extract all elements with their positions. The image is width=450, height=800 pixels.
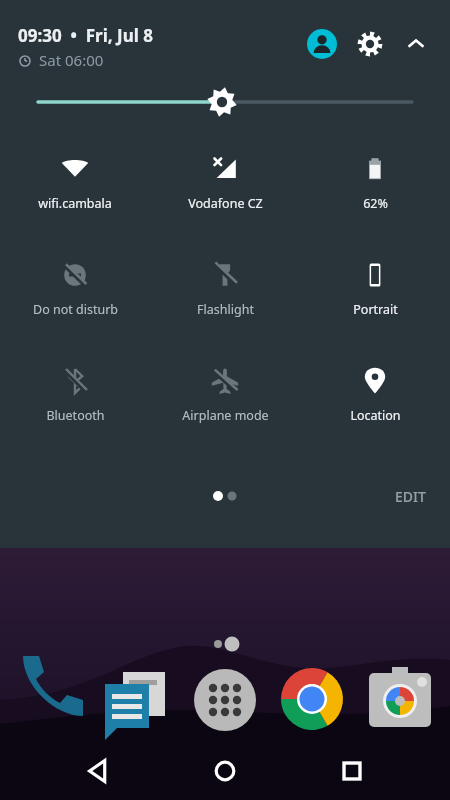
staticText: Portrait <box>353 301 398 318</box>
staticText: 62% <box>363 195 388 212</box>
button[interactable]: Vodafone CZ <box>150 150 300 216</box>
button[interactable]: EDIT <box>389 481 432 512</box>
staticText: EDIT <box>395 487 426 506</box>
staticText: Airplane mode <box>182 407 269 424</box>
button[interactable]: Phone <box>22 668 86 732</box>
staticText: Location <box>350 407 401 424</box>
button[interactable]: Brightness <box>0 82 450 122</box>
button[interactable]: 62% <box>300 150 450 216</box>
button[interactable]: Airplane mode <box>150 362 300 428</box>
staticText: Bluetooth <box>46 407 105 424</box>
button[interactable]: Location <box>300 362 450 428</box>
button[interactable]: Portrait <box>300 256 450 322</box>
button[interactable]: Messages <box>107 668 171 732</box>
button[interactable]: Collapse <box>396 24 436 64</box>
button[interactable]: Home <box>196 742 254 800</box>
button[interactable]: Camera <box>364 668 428 732</box>
staticText: 09:30 • Fri, Jul 8 <box>18 24 153 47</box>
button[interactable]: Do not disturb <box>0 256 150 322</box>
button[interactable]: wifi.cambala <box>0 150 150 216</box>
staticText: Do not disturb <box>33 301 118 318</box>
staticText: wifi.cambala <box>38 195 112 212</box>
button[interactable]: Settings <box>350 24 390 64</box>
button[interactable]: Flashlight <box>150 256 300 322</box>
button[interactable]: Recents <box>323 742 381 800</box>
button[interactable]: Bluetooth <box>0 362 150 428</box>
staticText: Sat 06:00 <box>39 50 104 70</box>
button[interactable]: Back <box>69 742 127 800</box>
staticText: Flashlight <box>197 301 254 318</box>
button[interactable]: Chrome <box>279 668 343 732</box>
staticText: Vodafone CZ <box>188 195 263 212</box>
button[interactable]: User <box>302 24 342 64</box>
button[interactable]: All apps <box>193 668 257 732</box>
